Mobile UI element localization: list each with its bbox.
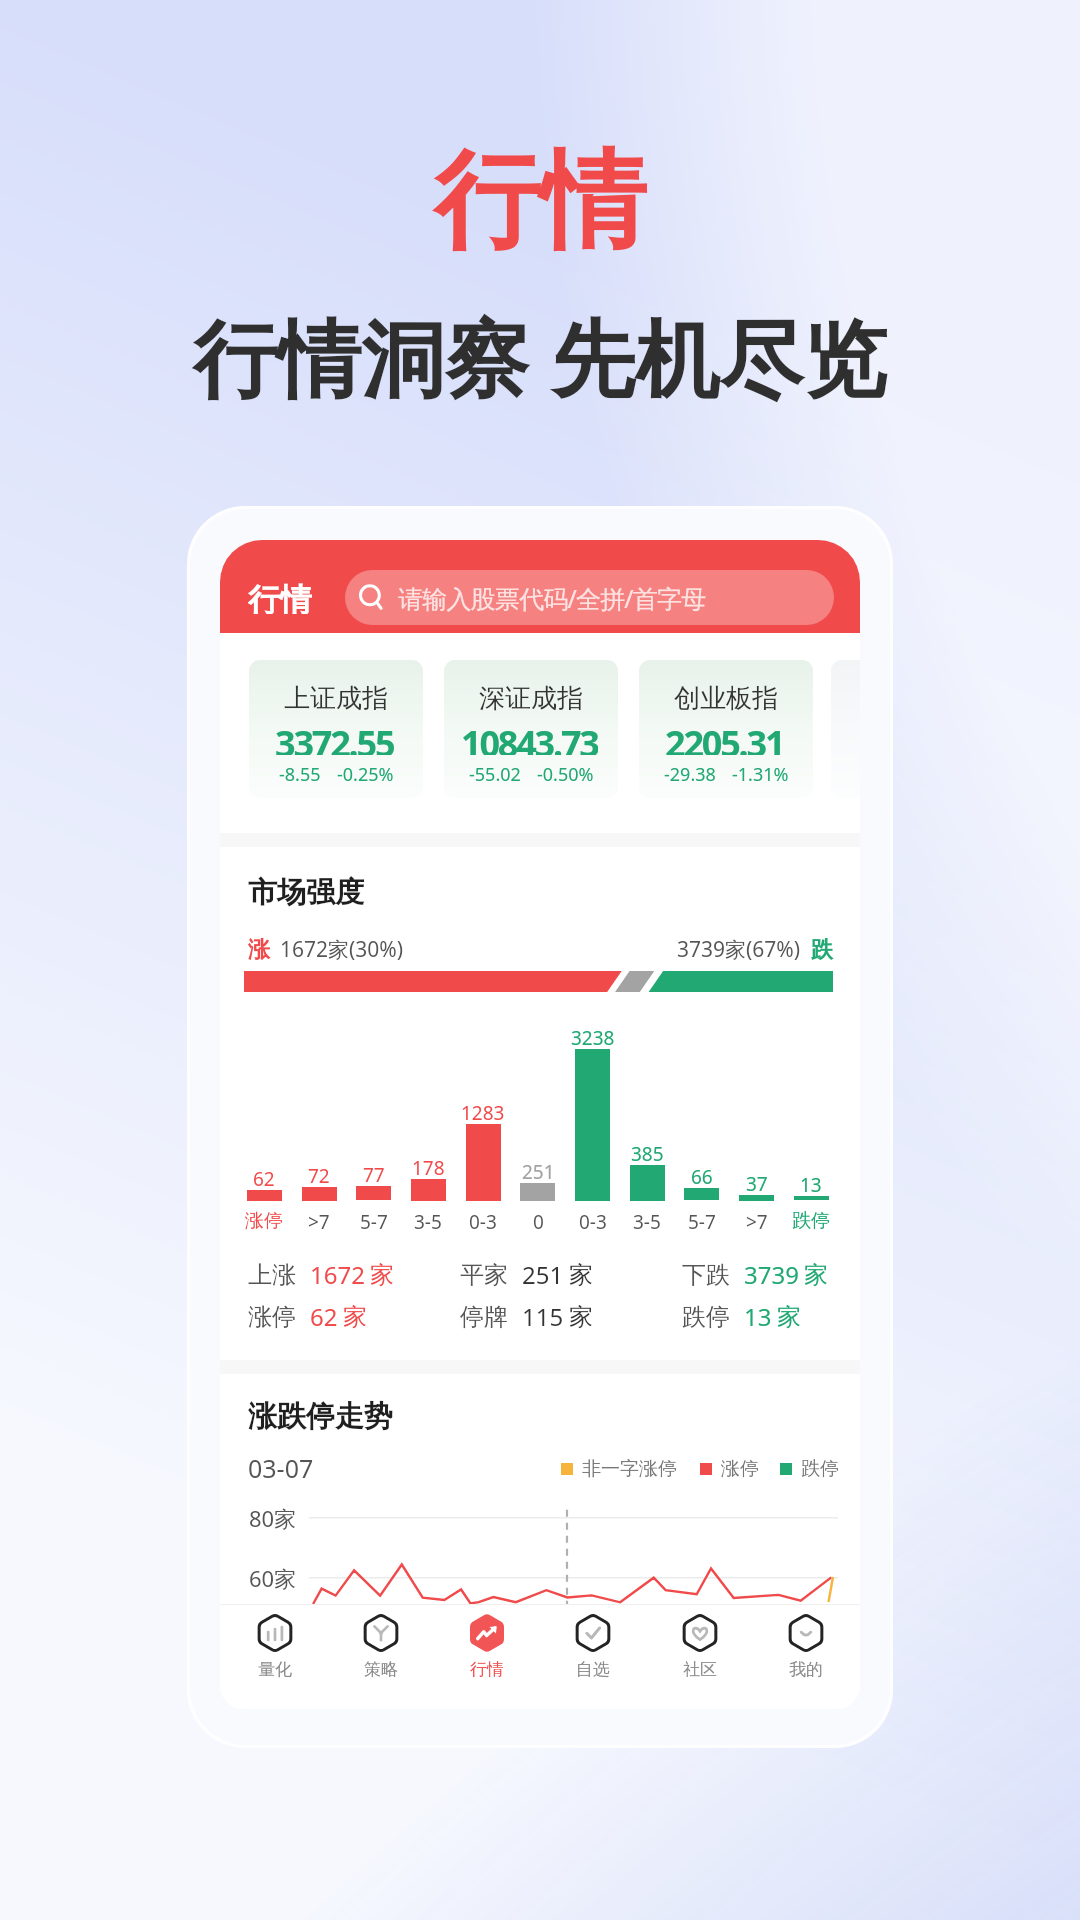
staticText: 60家	[249, 1563, 297, 1593]
staticText: 停牌	[460, 1302, 508, 1332]
staticText: 家	[343, 1302, 367, 1332]
staticText: 1672	[310, 1258, 365, 1291]
staticText: 涨停	[248, 1302, 296, 1332]
button[interactable]: 深证成指	[444, 660, 618, 798]
staticText: 62	[310, 1300, 338, 1333]
staticText: 1283	[461, 1100, 505, 1122]
staticText: 115	[522, 1300, 564, 1333]
staticText: 跌	[811, 936, 833, 964]
button[interactable]: 请输入股票代码/全拼/首字母	[345, 570, 834, 625]
staticText: 上涨	[248, 1260, 296, 1290]
staticText: 3-5	[414, 1209, 442, 1231]
staticText: -0.50%	[537, 762, 594, 786]
staticText: 3739家(67%)	[677, 935, 801, 964]
staticText: 请输入股票代码/全拼/首字母	[398, 581, 706, 615]
button[interactable]: Quant	[223, 1608, 327, 1698]
staticText: 178	[412, 1155, 445, 1177]
staticText: -29.38	[664, 762, 716, 786]
staticText: 10843.73	[461, 719, 598, 755]
button[interactable]: Market	[435, 1608, 539, 1698]
staticText: 77	[363, 1162, 385, 1184]
staticText: 5-7	[360, 1209, 388, 1231]
button[interactable]: Profile	[754, 1608, 858, 1698]
staticText: 市场强度	[248, 874, 364, 911]
staticText: 策略	[364, 1659, 398, 1680]
staticText: 家	[569, 1260, 593, 1290]
button[interactable]: Watchlist	[541, 1608, 645, 1698]
button[interactable]: Strategy	[329, 1608, 433, 1698]
staticText: 72	[308, 1163, 330, 1185]
staticText: 行情	[470, 1659, 504, 1680]
staticText: -55.02	[469, 762, 521, 786]
staticText: 自选	[576, 1659, 610, 1680]
button[interactable]: Community	[648, 1608, 752, 1698]
staticText: 62	[253, 1166, 275, 1188]
staticText: 跌停	[792, 1209, 830, 1231]
staticText: 251	[522, 1159, 555, 1181]
button[interactable]: 上证成指	[249, 660, 423, 798]
staticText: 涨跌停走势	[248, 1398, 393, 1435]
staticText: 13	[800, 1172, 822, 1194]
staticText: 涨	[248, 936, 270, 964]
staticText: 5-7	[688, 1209, 716, 1231]
staticText: 家	[370, 1260, 394, 1290]
staticText: -1.31%	[732, 762, 789, 786]
staticText: 3372.55	[275, 719, 394, 755]
staticText: 非一字涨停	[582, 1457, 677, 1481]
staticText: -0.25%	[337, 762, 394, 786]
staticText: 家	[777, 1302, 801, 1332]
staticText: 3-5	[633, 1209, 661, 1231]
staticText: 家	[804, 1260, 828, 1290]
staticText: 涨停	[721, 1457, 759, 1481]
staticText: 下跌	[682, 1260, 730, 1290]
staticText: 03-07	[248, 1451, 314, 1485]
staticText: 66	[691, 1164, 713, 1186]
staticText: 涨停	[245, 1209, 283, 1231]
button[interactable]: 创业板指	[639, 660, 813, 798]
staticText: 0-3	[579, 1209, 607, 1231]
staticText: 80家	[249, 1503, 297, 1533]
staticText: 行情	[248, 580, 312, 614]
staticText: 我的	[789, 1659, 823, 1680]
staticText: 385	[631, 1141, 664, 1163]
staticText: 37	[746, 1171, 768, 1193]
staticText: 3238	[571, 1025, 615, 1047]
staticText: 上证成指	[284, 682, 388, 715]
staticText: 251	[522, 1258, 564, 1291]
staticText: 社区	[683, 1659, 717, 1680]
staticText: 2205.31	[665, 719, 784, 755]
staticText: 跌停	[682, 1302, 730, 1332]
staticText: 0-3	[469, 1209, 497, 1231]
staticText: 家	[569, 1302, 593, 1332]
staticText: 13	[744, 1300, 772, 1333]
staticText: 3739	[744, 1258, 799, 1291]
staticText: 1672家(30%)	[280, 935, 404, 964]
staticText: 创业板指	[674, 682, 778, 715]
staticText: >7	[746, 1209, 768, 1231]
staticText: 量化	[258, 1659, 292, 1680]
staticText: -8.55	[279, 762, 321, 786]
staticText: >7	[308, 1209, 330, 1231]
staticText: 平家	[460, 1260, 508, 1290]
staticText: 行情洞察 先机尽览	[193, 299, 887, 414]
staticText: 深证成指	[479, 682, 583, 715]
staticText: 0	[533, 1209, 544, 1231]
staticText: 行情	[434, 135, 646, 269]
staticText: 跌停	[801, 1457, 839, 1481]
